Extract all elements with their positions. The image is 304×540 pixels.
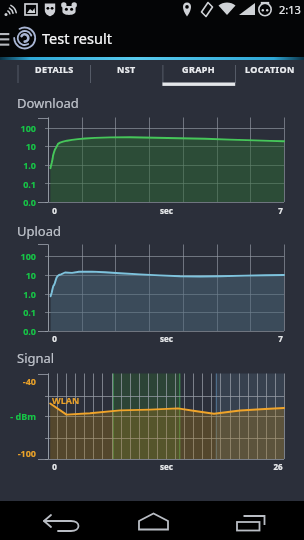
staticText: 0.0 <box>23 196 36 208</box>
button[interactable]: GRAPH <box>162 57 235 90</box>
staticText: 100 <box>20 122 36 134</box>
button[interactable]: Home <box>102 501 203 540</box>
staticText: 7 <box>278 205 283 216</box>
staticText: 0 <box>52 205 57 216</box>
button[interactable]: Test result <box>42 28 112 48</box>
staticText: 0 <box>52 333 57 344</box>
staticText: DETAILS <box>35 63 74 75</box>
staticText: 0.0 <box>23 325 36 337</box>
button[interactable]: Back <box>0 501 102 540</box>
button[interactable]: App logo <box>12 19 38 57</box>
staticText: 2:13 <box>279 2 301 17</box>
staticText: 1.0 <box>23 288 36 300</box>
staticText: - dBm <box>10 410 36 422</box>
staticText: WLAN <box>52 394 80 406</box>
staticText: 0.1 <box>23 178 36 190</box>
button[interactable]: Open navigation menu <box>0 19 14 57</box>
staticText: 1.0 <box>23 159 36 171</box>
staticText: sec <box>160 205 173 216</box>
staticText: 7 <box>278 333 283 344</box>
staticText: NST <box>117 63 136 75</box>
staticText: 10 <box>25 140 36 152</box>
staticText: sec <box>160 461 173 472</box>
staticText: sec <box>160 333 173 344</box>
button[interactable]: NST <box>90 57 162 90</box>
staticText: -100 <box>17 447 36 459</box>
staticText: 26 <box>273 461 283 472</box>
staticText: 100 <box>20 250 36 262</box>
staticText: -40 <box>22 375 36 387</box>
button[interactable]: DETAILS <box>18 57 91 90</box>
staticText: 0.1 <box>23 306 36 318</box>
staticText: Upload <box>17 222 62 240</box>
button[interactable]: LOCATION <box>235 57 304 90</box>
staticText: Signal <box>17 349 55 367</box>
button[interactable]: Recent apps <box>203 501 304 540</box>
staticText: 10 <box>25 269 36 281</box>
staticText: 0 <box>52 461 57 472</box>
staticText: Download <box>17 94 79 112</box>
staticText: LOCATION <box>245 63 295 75</box>
staticText: GRAPH <box>182 63 216 75</box>
